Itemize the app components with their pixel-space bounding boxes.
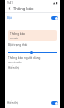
button[interactable]: Back	[7, 6, 12, 11]
button[interactable]: Bật	[5, 13, 60, 22]
staticText: Hiển thị	[7, 101, 19, 105]
staticText: Bật trạng thái	[8, 43, 28, 47]
staticText: Bật	[7, 16, 12, 20]
staticText: Thông báo người dùng	[8, 56, 41, 60]
staticText: ▲ ▮	[53, 1, 58, 5]
staticText: Thông báo	[13, 6, 34, 11]
staticText: mô tả ngắn	[8, 60, 22, 63]
staticText: Hiển thị	[8, 66, 20, 70]
staticText: Thông báo	[10, 32, 26, 36]
staticText: chi tiết	[10, 36, 18, 39]
staticText: 9:41	[7, 1, 13, 5]
button[interactable]: Thông báo	[8, 30, 57, 41]
button[interactable]: Hiển thị	[5, 98, 60, 108]
